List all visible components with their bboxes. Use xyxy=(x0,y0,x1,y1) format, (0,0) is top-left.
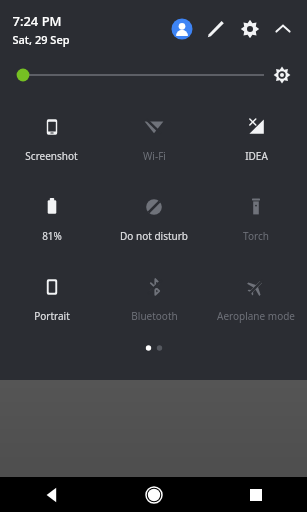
button[interactable]: IDEA xyxy=(205,98,307,178)
staticText: Torch xyxy=(243,229,269,243)
button[interactable]: Back xyxy=(0,477,103,512)
button[interactable]: Wi-Fi xyxy=(103,98,205,178)
staticText: IDEA xyxy=(245,149,268,163)
button[interactable]: Torch xyxy=(205,178,307,258)
button[interactable]: Home xyxy=(103,477,205,512)
button[interactable]: Do not disturb xyxy=(103,178,205,258)
button[interactable]: Portrait xyxy=(0,258,103,338)
staticText: Screenshot xyxy=(25,149,78,163)
button[interactable]: Account xyxy=(165,12,199,46)
button[interactable]: Auto brightness xyxy=(267,60,297,90)
staticText: Aeroplane mode xyxy=(217,309,295,323)
staticText: Wi-Fi xyxy=(143,149,166,163)
button[interactable]: Settings xyxy=(233,12,267,46)
staticText: Do not disturb xyxy=(120,229,188,243)
button[interactable]: Bluetooth xyxy=(103,258,205,338)
button[interactable]: Aeroplane mode xyxy=(205,258,307,338)
button[interactable]: Recents xyxy=(205,477,307,512)
button[interactable]: Brightness xyxy=(14,63,264,87)
button[interactable]: 81% xyxy=(0,178,103,258)
staticText: 81% xyxy=(42,229,62,243)
staticText: Sat, 29 Sep xyxy=(12,32,70,47)
button[interactable]: Edit xyxy=(199,12,233,46)
staticText: Portrait xyxy=(34,309,70,323)
staticText: 7:24 PM xyxy=(12,12,62,30)
staticText: Bluetooth xyxy=(131,309,178,323)
button[interactable]: Collapse xyxy=(267,13,299,45)
button[interactable]: Screenshot xyxy=(0,98,103,178)
